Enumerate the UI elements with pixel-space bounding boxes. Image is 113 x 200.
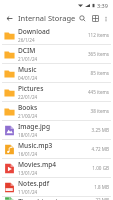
button[interactable]: Download <box>0 26 113 44</box>
staticText: 11/01/24 <box>18 189 38 195</box>
staticText: DCIM <box>18 46 36 55</box>
staticText: Books <box>18 103 38 112</box>
staticText: 04/01/24 <box>18 75 38 81</box>
button[interactable]: Movies.mp4 <box>0 159 113 177</box>
staticText: 38 items <box>90 108 109 114</box>
staticText: Notes.pdf <box>18 179 49 188</box>
staticText: 365 items <box>87 51 109 57</box>
staticText: 85 items <box>90 70 109 76</box>
staticText: 26/1/24 <box>18 37 35 43</box>
button[interactable]: Books <box>0 102 113 120</box>
staticText: Music.mp3 <box>18 141 53 150</box>
button[interactable]: Music.mp3 <box>0 140 113 158</box>
staticText: 22 MB <box>95 197 109 200</box>
staticText: 112 items <box>87 32 109 38</box>
button[interactable]: Grid view <box>89 12 102 25</box>
staticText: 21/00/24 <box>18 113 38 119</box>
staticText: 22/01/24 <box>18 94 38 100</box>
staticText: 3.25 MB <box>91 127 109 133</box>
staticText: 13/01/24 <box>18 170 38 176</box>
staticText: Movies.mp4 <box>18 160 57 169</box>
staticText: 16/01/24 <box>18 151 38 157</box>
button[interactable]: Pictures <box>0 83 113 101</box>
staticText: 1.00 GB <box>92 165 109 171</box>
staticText: 21/01/24 <box>18 56 38 62</box>
button[interactable]: More options <box>102 13 110 24</box>
staticText: Download <box>18 27 50 36</box>
button[interactable]: Back <box>3 12 16 25</box>
staticText: Music <box>18 65 37 74</box>
button[interactable]: Ziparchive.zip <box>0 197 113 200</box>
staticText: Image.jpg <box>18 122 50 131</box>
staticText: Internal Storage <box>18 13 76 23</box>
button[interactable]: DCIM <box>0 45 113 63</box>
button[interactable]: Music <box>0 64 113 82</box>
button[interactable]: Search <box>76 12 89 25</box>
staticText: 4.72 MB <box>91 146 109 152</box>
staticText: Pictures <box>18 84 44 93</box>
button[interactable]: Notes.pdf <box>0 178 113 196</box>
staticText: 18/01/24 <box>18 132 38 138</box>
staticText: 445 items <box>87 89 109 95</box>
staticText: 3:39 <box>97 2 108 9</box>
staticText: Ziparchive.zip <box>18 197 62 200</box>
button[interactable]: Image.jpg <box>0 121 113 139</box>
staticText: 1.8 MB <box>94 184 109 190</box>
